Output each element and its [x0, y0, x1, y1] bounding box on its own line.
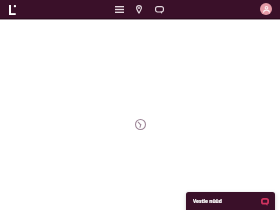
button[interactable]: Messages [149, 1, 170, 18]
button[interactable]: Location [128, 1, 149, 18]
button[interactable]: Vestle nüüd [186, 192, 275, 210]
button[interactable]: Home [3, 1, 22, 18]
button[interactable]: Menu [111, 1, 128, 18]
button[interactable]: Account [260, 3, 272, 15]
staticText: Vestle nüüd [193, 198, 222, 205]
